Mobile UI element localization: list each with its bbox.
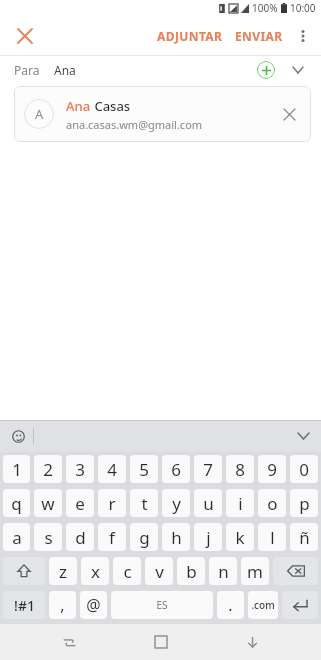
button[interactable]: s <box>34 523 62 551</box>
button[interactable]: Cerrar <box>10 21 40 51</box>
button[interactable]: ENVIAR <box>229 20 289 52</box>
button[interactable]: u <box>194 489 222 517</box>
button[interactable]: 2 <box>34 455 62 483</box>
staticText: 8 <box>235 458 245 481</box>
staticText: 5 <box>139 458 149 481</box>
button[interactable]: b <box>177 557 205 585</box>
staticText: z <box>59 560 67 583</box>
button[interactable]: Recientes <box>47 624 91 660</box>
staticText: v <box>155 560 164 583</box>
staticText: , <box>60 594 65 616</box>
button[interactable]: Intro <box>282 591 318 619</box>
button[interactable]: 3 <box>66 455 94 483</box>
button[interactable]: g <box>130 523 158 551</box>
button[interactable]: a <box>3 523 30 551</box>
staticText: A <box>35 105 44 123</box>
button[interactable]: j <box>194 523 222 551</box>
button[interactable]: x <box>81 557 109 585</box>
button[interactable]: l <box>258 523 286 551</box>
staticText: 100% <box>252 1 278 15</box>
button[interactable]: d <box>66 523 94 551</box>
button[interactable]: Atrás <box>230 624 274 660</box>
staticText: c <box>123 560 132 583</box>
button[interactable]: Añadir contacto <box>257 61 275 79</box>
staticText: w <box>41 492 55 515</box>
button[interactable]: i <box>226 489 254 517</box>
staticText: r <box>108 492 116 515</box>
button[interactable]: c <box>113 557 141 585</box>
button[interactable]: r <box>98 489 126 517</box>
button[interactable]: @ <box>80 591 107 619</box>
button[interactable]: !#1 <box>3 591 45 619</box>
button[interactable]: n <box>209 557 237 585</box>
staticText: h <box>171 526 182 549</box>
staticText: ES <box>156 598 168 612</box>
staticText: 3 <box>75 458 85 481</box>
staticText: y <box>172 492 181 515</box>
button[interactable]: m <box>241 557 269 585</box>
button[interactable]: Emoji <box>5 423 31 449</box>
staticText: t <box>141 492 148 515</box>
staticText: 7 <box>203 458 213 481</box>
button[interactable]: e <box>66 489 94 517</box>
button[interactable]: 7 <box>194 455 222 483</box>
staticText: ñ <box>299 526 310 549</box>
button[interactable]: f <box>98 523 126 551</box>
staticText: Ana <box>54 62 76 78</box>
button[interactable]: 4 <box>98 455 126 483</box>
staticText: x <box>91 560 100 583</box>
staticText: Ana <box>66 97 91 115</box>
staticText: 10:00 <box>290 1 316 15</box>
button[interactable]: ADJUNTAR <box>151 20 229 52</box>
staticText: l <box>270 526 275 549</box>
button[interactable]: z <box>49 557 77 585</box>
staticText: 2 <box>43 458 53 481</box>
button[interactable]: 8 <box>226 455 254 483</box>
staticText: 4 <box>107 458 117 481</box>
button[interactable]: k <box>226 523 254 551</box>
button[interactable]: o <box>258 489 286 517</box>
button[interactable]: 9 <box>258 455 286 483</box>
button[interactable]: Inicio <box>139 624 183 660</box>
staticText: 1 <box>12 458 22 481</box>
staticText: q <box>11 492 22 515</box>
button[interactable]: w <box>34 489 62 517</box>
button[interactable]: h <box>162 523 190 551</box>
button[interactable]: .com <box>248 591 278 619</box>
button[interactable]: v <box>145 557 173 585</box>
staticText: u <box>203 492 214 515</box>
button[interactable]: Borrar <box>273 557 318 585</box>
button[interactable]: Quitar <box>277 102 301 126</box>
staticText: s <box>44 526 53 549</box>
button[interactable]: t <box>130 489 158 517</box>
button[interactable]: A <box>14 86 311 142</box>
button[interactable]: Expandir <box>289 61 307 79</box>
button[interactable]: p <box>290 489 318 517</box>
staticText: b <box>186 560 197 583</box>
button[interactable]: 5 <box>130 455 158 483</box>
staticText: Casas <box>91 97 131 115</box>
button[interactable]: 1 <box>3 455 30 483</box>
staticText: j <box>206 526 211 549</box>
button[interactable]: Mayúsculas <box>3 557 45 585</box>
staticText: @ <box>86 594 101 616</box>
button[interactable]: . <box>217 591 244 619</box>
button[interactable]: Más opciones <box>289 22 317 50</box>
staticText: i <box>238 492 243 515</box>
staticText: ENVIAR <box>235 28 283 44</box>
button[interactable]: ES <box>111 591 213 619</box>
button[interactable]: q <box>3 489 30 517</box>
staticText: Para <box>14 62 40 78</box>
button[interactable]: 6 <box>162 455 190 483</box>
staticText: 9 <box>267 458 277 481</box>
button[interactable]: ñ <box>290 523 318 551</box>
button[interactable]: y <box>162 489 190 517</box>
staticText: n <box>218 560 229 583</box>
staticText: .com <box>251 598 275 612</box>
button[interactable]: , <box>49 591 76 619</box>
button[interactable]: Ocultar teclado <box>291 424 315 448</box>
staticText: k <box>235 526 245 549</box>
button[interactable]: 0 <box>290 455 318 483</box>
staticText: p <box>299 492 310 515</box>
staticText: Asunto <box>14 110 54 126</box>
